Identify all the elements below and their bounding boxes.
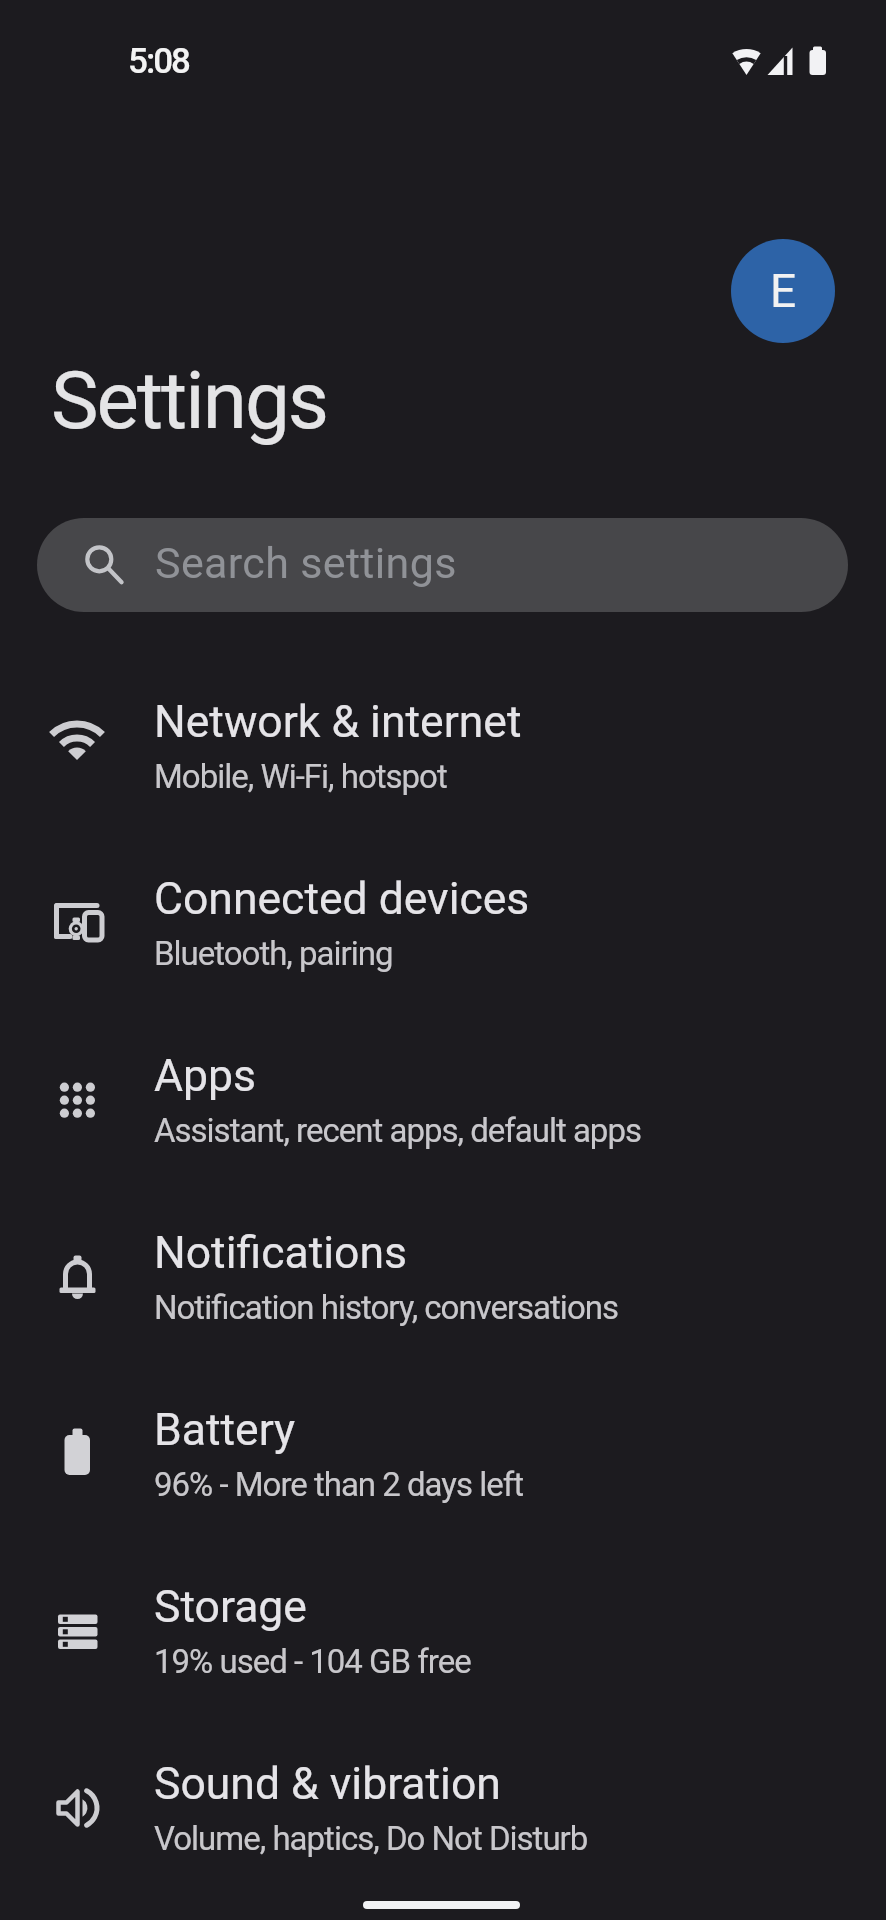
staticText: 19% used - 104 GB free (154, 1642, 471, 1681)
staticText: Sound & vibration (154, 1758, 501, 1810)
button[interactable]: Battery (0, 1365, 886, 1542)
staticText: E (770, 264, 797, 318)
staticText: Notifications (154, 1227, 407, 1279)
button[interactable]: Search settings (37, 518, 848, 612)
staticText: Storage (154, 1581, 307, 1633)
button[interactable]: Storage (0, 1542, 886, 1719)
button[interactable]: Notifications (0, 1188, 886, 1365)
button[interactable] (363, 1901, 520, 1909)
staticText: Network & internet (154, 696, 522, 748)
button[interactable]: E (731, 239, 835, 343)
staticText: Notification history, conversations (154, 1288, 618, 1327)
staticText: Settings (51, 354, 328, 448)
button[interactable]: Connected devices (0, 834, 886, 1011)
staticText: 5:08 (128, 41, 189, 82)
staticText: Apps (154, 1050, 256, 1102)
staticText: Bluetooth, pairing (154, 934, 393, 973)
staticText: Connected devices (154, 873, 530, 925)
staticText: Volume, haptics, Do Not Disturb (154, 1819, 588, 1858)
staticText: Mobile, Wi-Fi, hotspot (154, 757, 447, 796)
button[interactable]: Network & internet (0, 657, 886, 834)
staticText: Search settings (155, 538, 457, 588)
staticText: Assistant, recent apps, default apps (154, 1111, 641, 1150)
button[interactable]: Apps (0, 1011, 886, 1188)
button[interactable]: Sound & vibration (0, 1719, 886, 1896)
staticText: Battery (154, 1404, 296, 1456)
staticText: 96% - More than 2 days left (154, 1465, 523, 1504)
